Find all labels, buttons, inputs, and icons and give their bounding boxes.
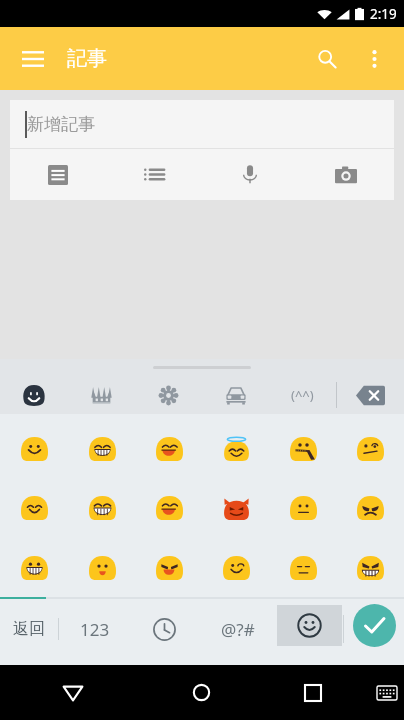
button[interactable]: Back <box>0 665 145 720</box>
button[interactable]: 123 <box>59 599 130 659</box>
button[interactable]: Travel <box>202 376 269 414</box>
button[interactable]: @?# <box>199 599 277 659</box>
button[interactable]: Emoji 11 <box>270 478 337 538</box>
staticText: 2:19 <box>370 5 397 23</box>
button[interactable]: Camera <box>298 149 394 200</box>
button[interactable]: Voice note <box>202 149 298 200</box>
button[interactable]: Emoji 13 <box>0 538 68 598</box>
button[interactable]: Emoji 5 <box>270 419 337 478</box>
staticText: 123 <box>80 618 110 641</box>
button[interactable]: Menu <box>11 37 55 81</box>
button[interactable]: Switch keyboard <box>369 665 404 720</box>
button[interactable]: Emoticons <box>269 376 336 414</box>
button[interactable]: Emoji 17 <box>270 538 337 598</box>
button[interactable]: Emoji 18 <box>337 538 404 598</box>
staticText: 新增記事 <box>27 114 95 135</box>
button[interactable]: Emoji 4 <box>203 419 270 478</box>
button[interactable]: Checklist <box>106 149 202 200</box>
button[interactable]: Done <box>353 604 396 647</box>
button[interactable]: Recent apps <box>257 665 369 720</box>
button[interactable]: Objects <box>68 376 135 414</box>
button[interactable]: Emoji 12 <box>337 478 404 538</box>
button[interactable]: Emoji 15 <box>136 538 203 598</box>
staticText: 返回 <box>13 619 45 639</box>
button[interactable]: More options <box>351 36 397 82</box>
button[interactable]: Emoji 6 <box>337 419 404 478</box>
staticText: (^^) <box>291 386 314 404</box>
button[interactable]: 返回 <box>0 599 58 659</box>
button[interactable]: Home <box>145 665 257 720</box>
button[interactable]: Emoji 8 <box>68 478 136 538</box>
button[interactable]: Search <box>303 35 351 83</box>
staticText: 記事 <box>67 46 107 71</box>
button[interactable]: Emoji 2 <box>68 419 136 478</box>
button[interactable]: Text note <box>10 149 106 200</box>
button[interactable]: Smileys <box>0 376 68 414</box>
button[interactable]: Nature <box>135 376 202 414</box>
button[interactable]: Emoji 9 <box>136 478 203 538</box>
button[interactable]: Emoji 10 <box>203 478 270 538</box>
button[interactable]: Emoji keyboard <box>277 605 342 646</box>
button[interactable]: Emoji 3 <box>136 419 203 478</box>
button[interactable]: Emoji 1 <box>0 419 68 478</box>
button[interactable]: Emoji 7 <box>0 478 68 538</box>
button[interactable]: Delete <box>337 376 404 414</box>
button[interactable]: Emoji 16 <box>203 538 270 598</box>
button[interactable]: Emoji 14 <box>68 538 136 598</box>
staticText: @?# <box>221 618 255 641</box>
button[interactable]: Recent <box>130 599 199 659</box>
